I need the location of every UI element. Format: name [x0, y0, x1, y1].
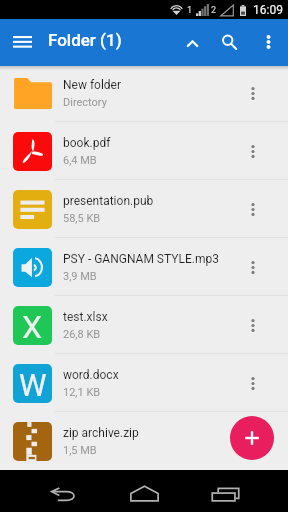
staticText: W	[19, 367, 47, 403]
button[interactable]: X	[0, 296, 288, 354]
button[interactable]: PSY - GANGNAM STYLE.mp3	[0, 238, 288, 296]
staticText: test.xlsx	[63, 310, 108, 324]
staticText: Folder (1)	[48, 30, 122, 50]
staticText: word.docx	[63, 368, 119, 382]
staticText: book.pdf	[63, 136, 111, 150]
staticText: presentation.pub	[63, 194, 154, 208]
staticText: 1,5 MB	[63, 444, 97, 457]
button[interactable]: Search	[209, 19, 249, 65]
button[interactable]: More options	[249, 19, 288, 65]
button[interactable]: More options	[234, 122, 272, 180]
button[interactable]: Open navigation menu	[0, 19, 45, 64]
staticText: PSY - GANGNAM STYLE.mp3	[63, 252, 219, 266]
button[interactable]: More options	[234, 180, 272, 238]
button[interactable]: More options	[234, 412, 272, 470]
button[interactable]: Home	[124, 473, 164, 512]
button[interactable]: More options	[234, 296, 272, 354]
button[interactable]: W	[0, 354, 288, 412]
staticText: 12,1 KB	[63, 386, 101, 399]
button[interactable]: Back	[43, 474, 83, 512]
staticText: 58,5 KB	[63, 212, 101, 225]
staticText: Directory	[63, 96, 107, 109]
staticText: New folder	[63, 78, 122, 92]
button[interactable]: More options	[234, 354, 272, 412]
staticText: 3,9 MB	[63, 270, 97, 283]
button[interactable]: presentation.pub	[0, 180, 288, 238]
staticText: 26,8 KB	[63, 328, 101, 341]
button[interactable]: Recent apps	[205, 474, 245, 512]
staticText: 2	[211, 5, 217, 16]
staticText: zip archive.zip	[63, 426, 139, 440]
staticText: 1	[187, 5, 193, 16]
button[interactable]: zip archive.zip	[0, 412, 288, 470]
button[interactable]: Add	[230, 416, 274, 460]
button[interactable]: Collapse	[172, 20, 212, 66]
button[interactable]: book.pdf	[0, 122, 288, 180]
button[interactable]: More options	[234, 238, 272, 296]
button[interactable]: More options	[234, 64, 272, 122]
staticText: 16:09	[253, 3, 283, 17]
button[interactable]: New folder	[0, 64, 288, 122]
staticText: 6,4 MB	[63, 154, 97, 167]
staticText: X	[22, 308, 43, 345]
